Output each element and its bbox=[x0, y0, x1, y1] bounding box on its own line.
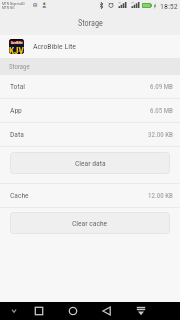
staticText: AcroBible Lite bbox=[33, 42, 76, 51]
button[interactable]: Clear data bbox=[10, 152, 170, 174]
staticText: MTN Nigeria4G bbox=[2, 1, 25, 5]
button[interactable]: Hide navigation bar bbox=[5, 302, 23, 320]
staticText: AcroBible bbox=[11, 41, 23, 45]
staticText: 6.05 MB bbox=[150, 107, 173, 115]
staticText: Storage bbox=[9, 63, 30, 71]
button[interactable]: Hide keyboard bbox=[132, 302, 150, 320]
staticText: MTN NG bbox=[2, 5, 15, 9]
staticText: KJV bbox=[9, 45, 24, 54]
staticText: 32.00 KB bbox=[148, 131, 173, 139]
button[interactable]: Total bbox=[0, 75, 180, 98]
staticText: 6.09 MB bbox=[150, 83, 173, 91]
button[interactable]: Clear cache bbox=[10, 212, 170, 234]
button[interactable]: Data bbox=[0, 123, 180, 146]
button[interactable]: Back bbox=[98, 302, 116, 320]
staticText: Storage bbox=[78, 18, 103, 28]
button[interactable]: Home bbox=[64, 302, 82, 320]
button[interactable]: App bbox=[0, 99, 180, 122]
staticText: Clear data bbox=[75, 159, 106, 168]
button[interactable]: Recent apps bbox=[30, 302, 48, 320]
staticText: App bbox=[10, 106, 22, 115]
staticText: Data bbox=[10, 130, 24, 139]
button[interactable]: AcroBible bbox=[0, 35, 180, 58]
button[interactable]: Cache bbox=[0, 184, 180, 207]
staticText: Cache bbox=[10, 191, 29, 200]
staticText: Total bbox=[10, 82, 26, 91]
staticText: Clear cache bbox=[72, 219, 108, 228]
staticText: 18:52 bbox=[160, 2, 178, 11]
staticText: 12.00 KB bbox=[148, 192, 173, 200]
